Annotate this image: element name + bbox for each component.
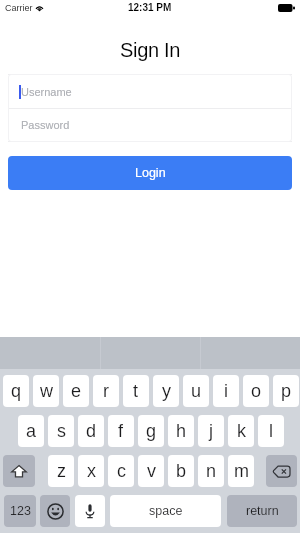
button[interactable]: i — [213, 375, 239, 407]
staticText: u — [191, 381, 202, 401]
button[interactable]: o — [243, 375, 269, 407]
button[interactable]: u — [183, 375, 209, 407]
button[interactable]: l — [258, 415, 284, 447]
staticText: Login — [135, 166, 166, 180]
button[interactable]: v — [138, 455, 164, 487]
staticText: m — [234, 461, 249, 481]
button[interactable]: h — [168, 415, 194, 447]
staticText: r — [103, 381, 109, 401]
button[interactable]: Shift — [3, 455, 35, 487]
staticText: l — [269, 421, 273, 441]
button[interactable]: w — [33, 375, 59, 407]
button[interactable]: d — [78, 415, 104, 447]
staticText: 123 — [10, 504, 31, 518]
staticText: Username — [21, 86, 72, 98]
staticText: g — [146, 421, 157, 441]
button[interactable]: f — [108, 415, 134, 447]
button[interactable]: t — [123, 375, 149, 407]
button[interactable]: Username — [8, 75, 292, 108]
staticText: i — [224, 381, 228, 401]
staticText: Carrier — [5, 3, 33, 13]
button[interactable]: Dictation — [75, 495, 105, 527]
staticText: k — [237, 421, 246, 441]
staticText: h — [176, 421, 187, 441]
button[interactable]: z — [48, 455, 74, 487]
staticText: space — [149, 504, 183, 518]
staticText: t — [133, 381, 139, 401]
staticText: s — [57, 421, 66, 441]
button[interactable]: m — [228, 455, 254, 487]
button[interactable]: n — [198, 455, 224, 487]
button[interactable]: g — [138, 415, 164, 447]
staticText: e — [71, 381, 82, 401]
button[interactable]: q — [3, 375, 29, 407]
staticText: f — [118, 421, 124, 441]
button[interactable]: space — [110, 495, 221, 527]
button[interactable]: j — [198, 415, 224, 447]
staticText: w — [40, 381, 53, 401]
staticText: c — [117, 461, 126, 481]
staticText: d — [86, 421, 97, 441]
staticText: o — [251, 381, 262, 401]
button[interactable]: r — [93, 375, 119, 407]
staticText: Sign In — [0, 39, 300, 61]
staticText: 12:31 PM — [128, 2, 172, 13]
staticText: a — [26, 421, 37, 441]
button[interactable]: b — [168, 455, 194, 487]
button[interactable]: Login — [8, 156, 292, 190]
button[interactable]: x — [78, 455, 104, 487]
staticText: z — [57, 461, 66, 481]
staticText: b — [176, 461, 187, 481]
staticText: q — [11, 381, 22, 401]
staticText: n — [206, 461, 217, 481]
button[interactable]: 123 — [4, 495, 36, 527]
staticText: v — [147, 461, 156, 481]
button[interactable]: Backspace — [266, 455, 297, 487]
button[interactable]: return — [227, 495, 297, 527]
button[interactable]: e — [63, 375, 89, 407]
button[interactable]: Password — [8, 109, 292, 141]
button[interactable]: k — [228, 415, 254, 447]
button[interactable]: a — [18, 415, 44, 447]
staticText: y — [162, 381, 171, 401]
button[interactable]: c — [108, 455, 134, 487]
staticText: return — [246, 504, 279, 518]
staticText: x — [87, 461, 96, 481]
staticText: Password — [21, 119, 70, 131]
button[interactable]: s — [48, 415, 74, 447]
button[interactable]: Emoji keyboard — [40, 495, 70, 527]
button[interactable]: y — [153, 375, 179, 407]
button[interactable]: p — [273, 375, 299, 407]
staticText: p — [281, 381, 292, 401]
staticText: j — [209, 421, 213, 441]
